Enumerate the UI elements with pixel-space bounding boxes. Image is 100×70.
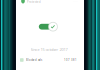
staticText: Protected — [27, 0, 41, 4]
button[interactable]: Protection toggle — [41, 22, 57, 32]
button[interactable]: Blocked ads — [16, 57, 82, 63]
staticText: Since 15 october 2017 — [30, 47, 67, 52]
staticText: Blocked ads — [26, 58, 42, 62]
staticText: 107 381 — [64, 58, 77, 62]
